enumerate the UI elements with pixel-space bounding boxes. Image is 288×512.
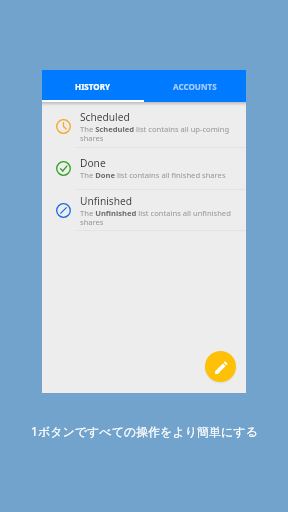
button[interactable]: HISTORY bbox=[42, 70, 144, 102]
button[interactable]: Done bbox=[42, 148, 246, 189]
staticText: Done bbox=[80, 156, 106, 170]
staticText: Scheduled bbox=[80, 110, 130, 124]
button[interactable]: Scheduled bbox=[42, 102, 246, 147]
staticText: The Unfinished list contains all unfinis… bbox=[80, 208, 238, 227]
staticText: Unfinished bbox=[80, 194, 132, 208]
staticText: The Scheduled list contains all up-comin… bbox=[80, 124, 238, 143]
staticText: The Done list contains all finished shar… bbox=[80, 170, 226, 180]
staticText: ACCOUNTS bbox=[173, 81, 217, 92]
button[interactable]: Unfinished bbox=[42, 190, 246, 231]
button[interactable]: ACCOUNTS bbox=[144, 70, 246, 102]
staticText: HISTORY bbox=[75, 81, 111, 92]
staticText: 1ボタンですべての操作をより簡単にする bbox=[31, 423, 258, 439]
button[interactable]: Compose new share bbox=[205, 351, 236, 382]
